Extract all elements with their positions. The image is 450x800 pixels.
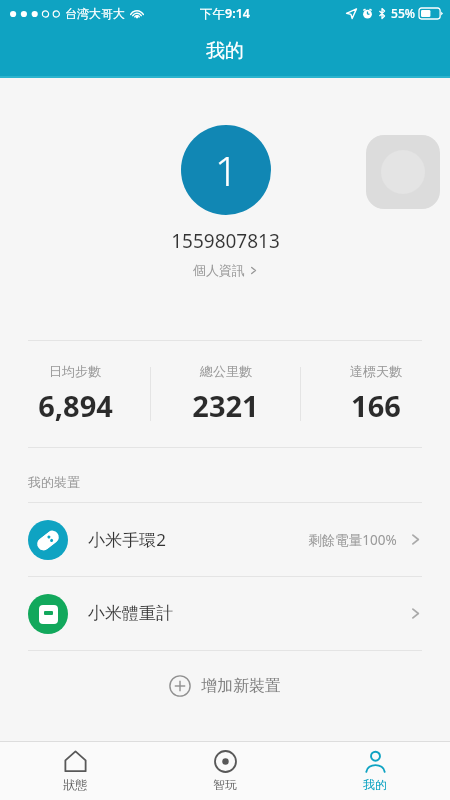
button[interactable]: Scan QR code — [366, 135, 440, 209]
button[interactable]: 小米體重計 — [0, 577, 450, 650]
button[interactable]: 智玩 — [170, 742, 280, 800]
button[interactable]: 總公里數 — [151, 357, 300, 431]
staticText: 1 — [215, 143, 238, 197]
staticText: 下午9:14 — [200, 5, 250, 22]
staticText: 台湾大哥大 — [65, 6, 125, 21]
staticText: 剩餘電量100% — [308, 531, 397, 549]
staticText: 1559807813 — [171, 228, 280, 254]
button[interactable]: Profile avatar — [181, 125, 271, 215]
staticText: 狀態 — [63, 777, 87, 792]
button[interactable]: 個人資訊 — [187, 260, 264, 280]
staticText: 小米體重計 — [88, 603, 173, 624]
button[interactable]: 小米手環2 — [0, 503, 450, 576]
button[interactable]: 增加新裝置 — [0, 651, 450, 721]
staticText: 日均步數 — [49, 363, 101, 379]
staticText: 2321 — [192, 386, 259, 425]
staticText: 增加新裝置 — [201, 676, 281, 696]
staticText: 達標天數 — [350, 363, 402, 379]
staticText: 6,894 — [38, 386, 113, 425]
button[interactable]: 狀態 — [20, 742, 130, 800]
staticText: 總公里數 — [200, 363, 252, 379]
staticText: 55% — [391, 5, 415, 21]
staticText: 小米手環2 — [88, 528, 166, 551]
button[interactable]: 我的 — [320, 742, 430, 800]
button[interactable]: 達標天數 — [301, 357, 450, 431]
button[interactable]: 日均步數 — [0, 357, 150, 431]
staticText: 我的 — [206, 39, 244, 63]
staticText: 個人資訊 — [193, 262, 245, 278]
staticText: 我的 — [363, 777, 387, 792]
staticText: 智玩 — [213, 777, 237, 792]
staticText: 我的裝置 — [28, 474, 80, 490]
staticText: 166 — [351, 386, 401, 425]
